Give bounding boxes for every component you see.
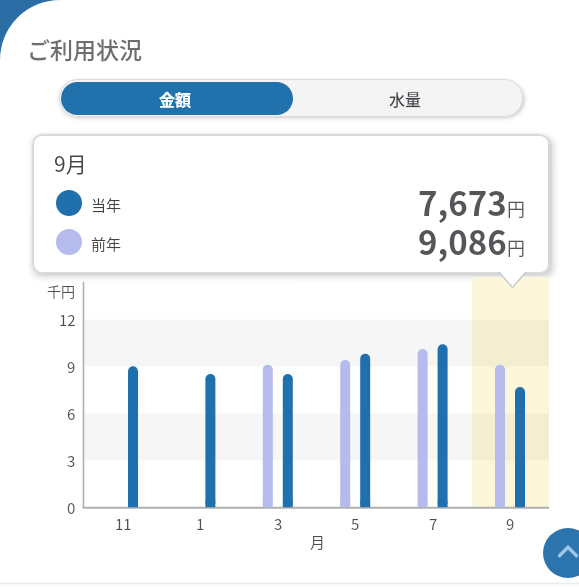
staticText: 9月: [54, 148, 87, 178]
staticText: 水量: [389, 87, 422, 110]
staticText: 9,086: [418, 217, 507, 265]
staticText: 前年: [91, 233, 122, 255]
staticText: 3: [67, 450, 76, 472]
staticText: 0: [67, 497, 76, 519]
staticText: 11: [115, 513, 132, 535]
staticText: 12: [59, 309, 76, 331]
staticText: 6: [67, 403, 76, 425]
staticText: 9: [67, 356, 76, 378]
button[interactable]: [543, 528, 579, 578]
staticText: ご利用状況: [27, 32, 142, 65]
staticText: 円: [507, 195, 525, 221]
staticText: 円: [507, 234, 525, 260]
staticText: 7: [429, 513, 438, 535]
staticText: 千円: [47, 281, 75, 301]
staticText: 金額: [159, 87, 192, 110]
staticText: 3: [274, 513, 283, 535]
staticText: 9: [506, 513, 515, 535]
button[interactable]: 金額: [61, 82, 293, 115]
staticText: 5: [351, 513, 360, 535]
staticText: 1: [196, 513, 205, 535]
button[interactable]: 水量: [293, 79, 523, 117]
staticText: 7,673: [418, 178, 507, 226]
staticText: 月: [310, 531, 326, 553]
staticText: 当年: [91, 194, 122, 216]
